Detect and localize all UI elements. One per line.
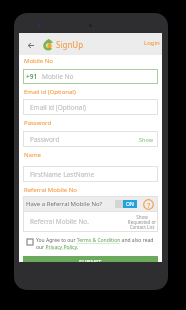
button[interactable]: +91 [23,69,158,84]
staticText: FirstName LastName [30,170,95,179]
button[interactable]: Email id (Optional) [23,99,158,115]
staticText: Name [24,151,41,159]
staticText: Referral Mobile No. [30,217,90,226]
staticText: Mobile No [24,57,53,65]
staticText: Show Requested or Contact List [122,214,162,230]
staticText: Mobile No [42,72,74,81]
staticText: SignUp [56,39,84,50]
button[interactable]: Password [23,131,158,147]
button[interactable]: SUBMIT [23,256,158,262]
staticText: Show [139,136,153,143]
button[interactable]: Referral Mobile No. [23,212,158,231]
button[interactable]: Login [140,37,162,49]
staticText: Password [30,135,60,144]
staticText: +91 [26,72,38,81]
button[interactable]: Show [134,133,158,146]
button[interactable]: Have a Referral Mobile No? [23,196,158,211]
button[interactable]: Back [24,38,38,52]
staticText: Email id (Optional) [24,88,76,96]
button[interactable]: FirstName LastName [23,166,158,182]
staticText: Login [144,39,160,47]
staticText: Have a Referral Mobile No? [26,200,103,208]
staticText: You Agree to our Terms & Condition and a… [36,237,158,250]
staticText: ? [147,200,151,210]
staticText: Referral Mobile No [24,186,77,194]
staticText: Password [24,119,52,127]
button[interactable]: You Agree to our Terms & Condition and a… [23,237,159,250]
button[interactable]: Referral toggle on [115,200,137,208]
staticText: ON [126,201,134,208]
staticText: Email id (Optional) [30,103,87,112]
button[interactable]: Help [143,199,154,210]
staticText: SUBMIT [79,258,102,262]
